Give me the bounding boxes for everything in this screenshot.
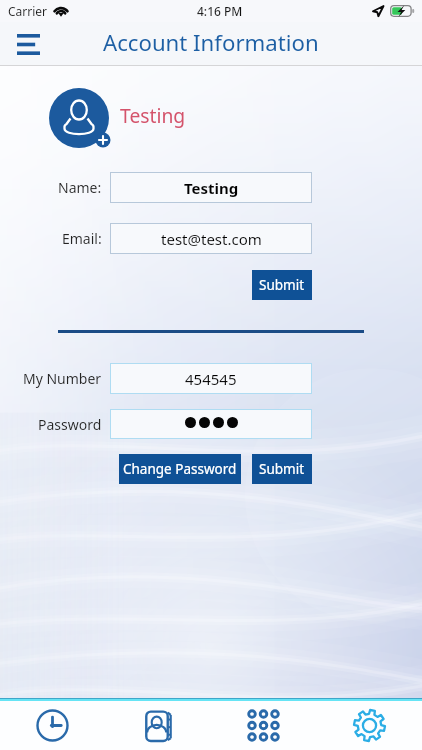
- button[interactable]: test@test.com: [110, 223, 312, 254]
- staticText: Name:: [58, 178, 102, 197]
- staticText: Testing: [184, 178, 239, 198]
- staticText: My Number: [23, 369, 102, 388]
- staticText: Email:: [62, 229, 102, 248]
- button[interactable]: Settings: [316, 701, 422, 750]
- staticText: 4:16 PM: [197, 3, 243, 19]
- button[interactable]: Contacts: [105, 701, 210, 750]
- button[interactable]: Submit: [252, 454, 312, 484]
- staticText: Change Password: [123, 460, 237, 478]
- button[interactable]: Submit: [252, 270, 312, 300]
- staticText: Submit: [259, 276, 305, 294]
- staticText: 454545: [185, 369, 237, 389]
- button[interactable]: 454545: [110, 363, 312, 394]
- staticText: Testing: [120, 102, 186, 128]
- button[interactable]: Recents: [0, 701, 105, 750]
- staticText: Submit: [259, 460, 305, 478]
- button[interactable]: Testing: [110, 172, 312, 203]
- staticText: Password: [38, 415, 102, 434]
- button[interactable]: Change Password: [119, 454, 241, 484]
- staticText: Carrier: [8, 3, 48, 19]
- button[interactable]: [110, 409, 312, 439]
- button[interactable]: Menu: [11, 27, 45, 61]
- staticText: test@test.com: [161, 229, 262, 249]
- staticText: Account Information: [103, 27, 319, 57]
- button[interactable]: Keypad: [210, 701, 316, 750]
